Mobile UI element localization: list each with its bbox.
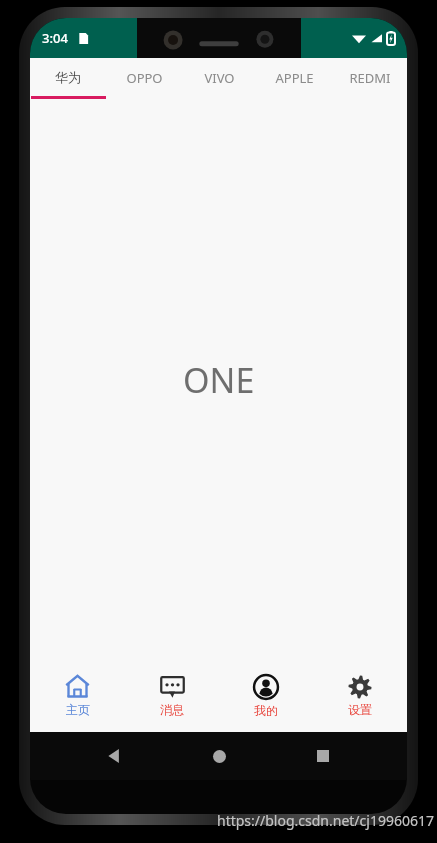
- staticText: VIVO: [204, 69, 235, 87]
- button[interactable]: Back: [94, 736, 134, 776]
- staticText: 设置: [348, 702, 372, 717]
- other: 主页: [65, 674, 90, 699]
- staticText: OPPO: [126, 69, 163, 87]
- button[interactable]: OPPO: [106, 58, 182, 100]
- staticText: https://blog.csdn.net/cj19960617: [217, 811, 434, 830]
- staticText: REDMI: [349, 69, 391, 87]
- button[interactable]: 主页: [30, 659, 125, 732]
- button[interactable]: 我的: [219, 659, 313, 732]
- staticText: 主页: [66, 702, 90, 717]
- staticText: ONE: [183, 357, 255, 403]
- button[interactable]: APPLE: [257, 58, 332, 100]
- button[interactable]: REDMI: [332, 58, 407, 100]
- staticText: 消息: [160, 702, 184, 717]
- button[interactable]: Home: [199, 736, 239, 776]
- button[interactable]: VIVO: [182, 58, 257, 100]
- staticText: 3:04: [42, 29, 68, 47]
- other: 我的: [253, 674, 279, 700]
- button[interactable]: Recents: [303, 736, 343, 776]
- staticText: APPLE: [275, 69, 314, 87]
- button[interactable]: 华为: [30, 58, 106, 100]
- staticText: 华为: [55, 69, 81, 85]
- other: 设置: [348, 675, 372, 699]
- button[interactable]: 消息: [125, 659, 219, 732]
- button[interactable]: 设置: [313, 659, 407, 732]
- staticText: 我的: [254, 703, 278, 718]
- other: 消息: [160, 674, 185, 699]
